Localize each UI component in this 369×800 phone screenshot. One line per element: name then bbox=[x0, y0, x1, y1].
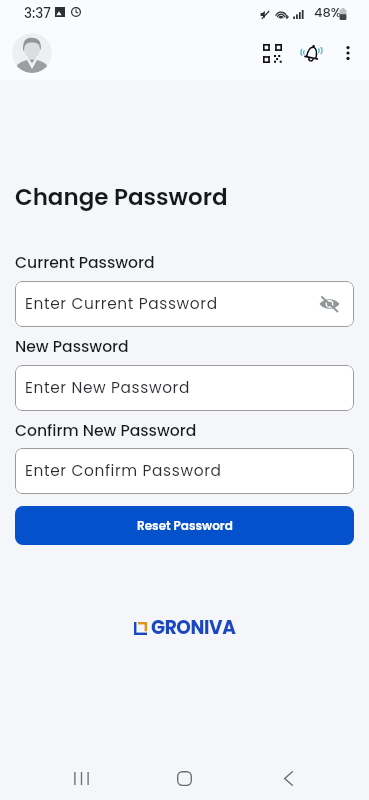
button[interactable]: Scan QR code bbox=[258, 35, 294, 71]
button[interactable]: Reset Password bbox=[15, 506, 354, 545]
staticText: 3:37 bbox=[24, 4, 51, 23]
staticText: Enter Current Password bbox=[25, 293, 218, 315]
button[interactable]: Home bbox=[164, 760, 205, 797]
button[interactable]: Profile bbox=[12, 33, 52, 73]
staticText: GRONIVA bbox=[151, 615, 236, 641]
button[interactable]: Show password bbox=[316, 291, 342, 317]
staticText: Enter Confirm Password bbox=[25, 460, 222, 482]
button[interactable]: More options bbox=[332, 37, 364, 69]
staticText: Current Password bbox=[15, 252, 155, 274]
staticText: Change Password bbox=[15, 181, 228, 213]
staticText: Enter New Password bbox=[25, 377, 190, 399]
staticText: Confirm New Password bbox=[15, 420, 197, 442]
staticText: New Password bbox=[15, 336, 129, 358]
staticText: 48% bbox=[314, 3, 342, 21]
button[interactable]: Back bbox=[268, 760, 309, 797]
button[interactable]: Enter New Password bbox=[15, 365, 354, 411]
staticText: Reset Password bbox=[137, 517, 233, 534]
button[interactable]: Enter Current Password bbox=[15, 281, 354, 327]
button[interactable]: Notifications bbox=[296, 35, 332, 71]
button[interactable]: Recent apps bbox=[61, 760, 102, 797]
button[interactable]: Enter Confirm Password bbox=[15, 448, 354, 494]
